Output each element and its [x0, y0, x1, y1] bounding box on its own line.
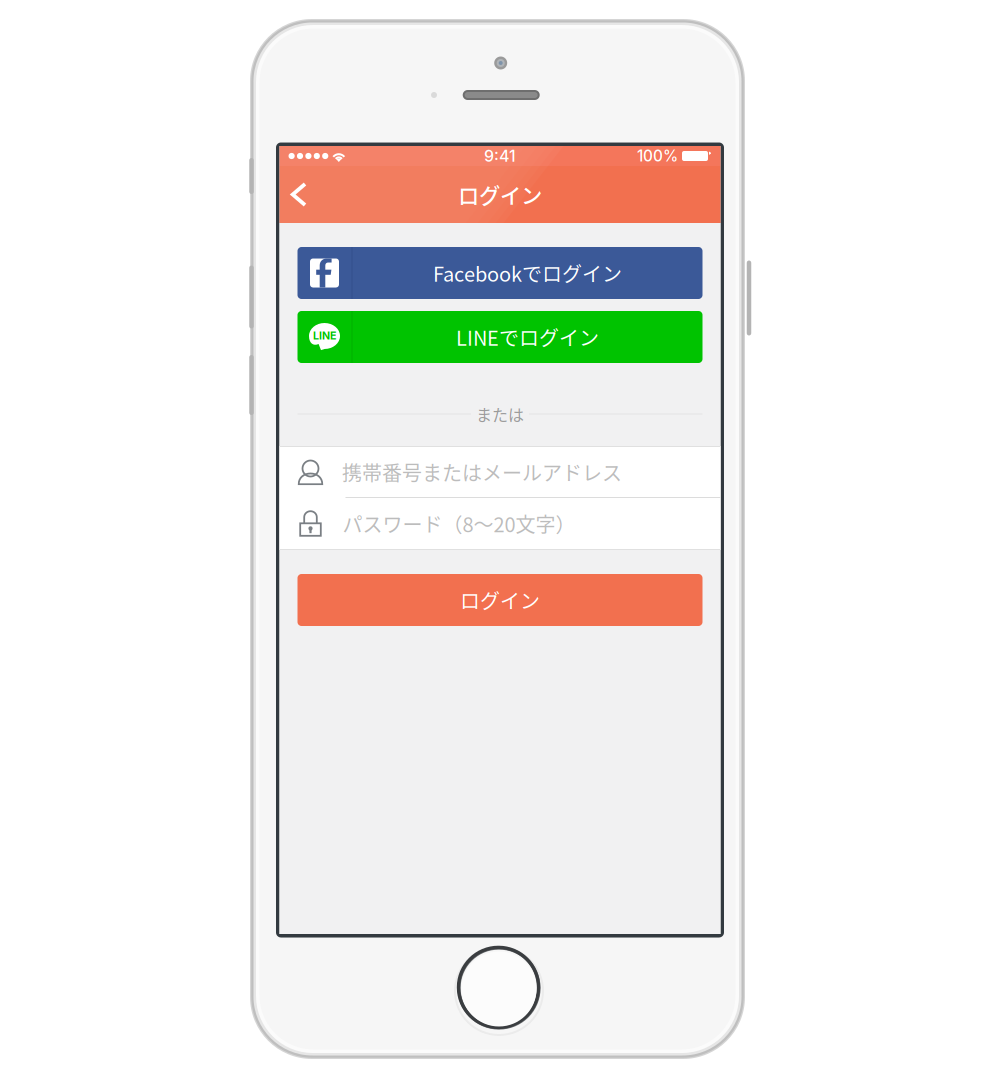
staticText: 100%: [637, 147, 678, 165]
button[interactable]: LINE: [297, 311, 702, 363]
staticText: パスワード（8〜20文字）: [342, 509, 575, 538]
button[interactable]: Facebookでログイン: [297, 247, 702, 299]
staticText: ログイン: [458, 179, 542, 210]
staticText: LINE: [313, 329, 336, 342]
staticText: ログイン: [460, 585, 540, 614]
staticText: 9:41: [484, 146, 516, 166]
staticText: LINEでログイン: [456, 322, 599, 351]
staticText: 携帯番号またはメールアドレス: [342, 457, 622, 486]
staticText: または: [476, 402, 524, 426]
staticText: Facebookでログイン: [433, 258, 622, 287]
button[interactable]: ログイン: [297, 574, 702, 626]
button[interactable]: Back: [279, 166, 326, 223]
